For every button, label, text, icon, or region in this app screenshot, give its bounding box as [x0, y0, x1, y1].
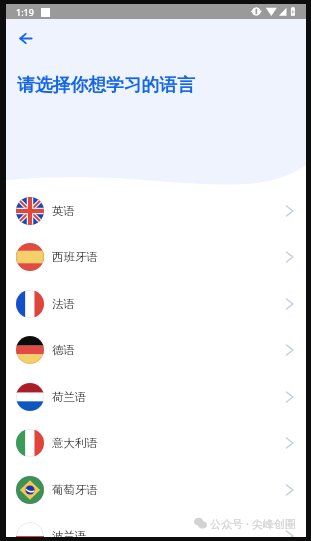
staticText: 法语 — [52, 297, 75, 311]
staticText: 英语 — [52, 204, 75, 218]
staticText: 1:19 — [16, 6, 34, 18]
button[interactable]: 西班牙语 — [6, 233, 306, 280]
staticText: 请选择你想学习的语言 — [17, 74, 195, 96]
staticText: 荷兰语 — [52, 390, 87, 404]
staticText: 葡萄牙语 — [52, 483, 98, 497]
staticText: 波兰语 — [52, 529, 87, 537]
staticText: 西班牙语 — [52, 250, 98, 264]
staticText: 意大利语 — [52, 436, 98, 450]
button[interactable]: 波兰语 — [6, 512, 306, 537]
button[interactable]: 意大利语 — [6, 419, 306, 466]
button[interactable]: 法语 — [6, 280, 306, 327]
button[interactable]: 荷兰语 — [6, 373, 306, 420]
staticText: 公众号 · 尖峰创圈 — [210, 516, 296, 531]
staticText: 德语 — [52, 343, 75, 357]
button[interactable]: 德语 — [6, 326, 306, 373]
button[interactable]: Back — [9, 22, 41, 54]
button[interactable]: 英语 — [6, 187, 306, 234]
button[interactable]: 葡萄牙语 — [6, 466, 306, 513]
